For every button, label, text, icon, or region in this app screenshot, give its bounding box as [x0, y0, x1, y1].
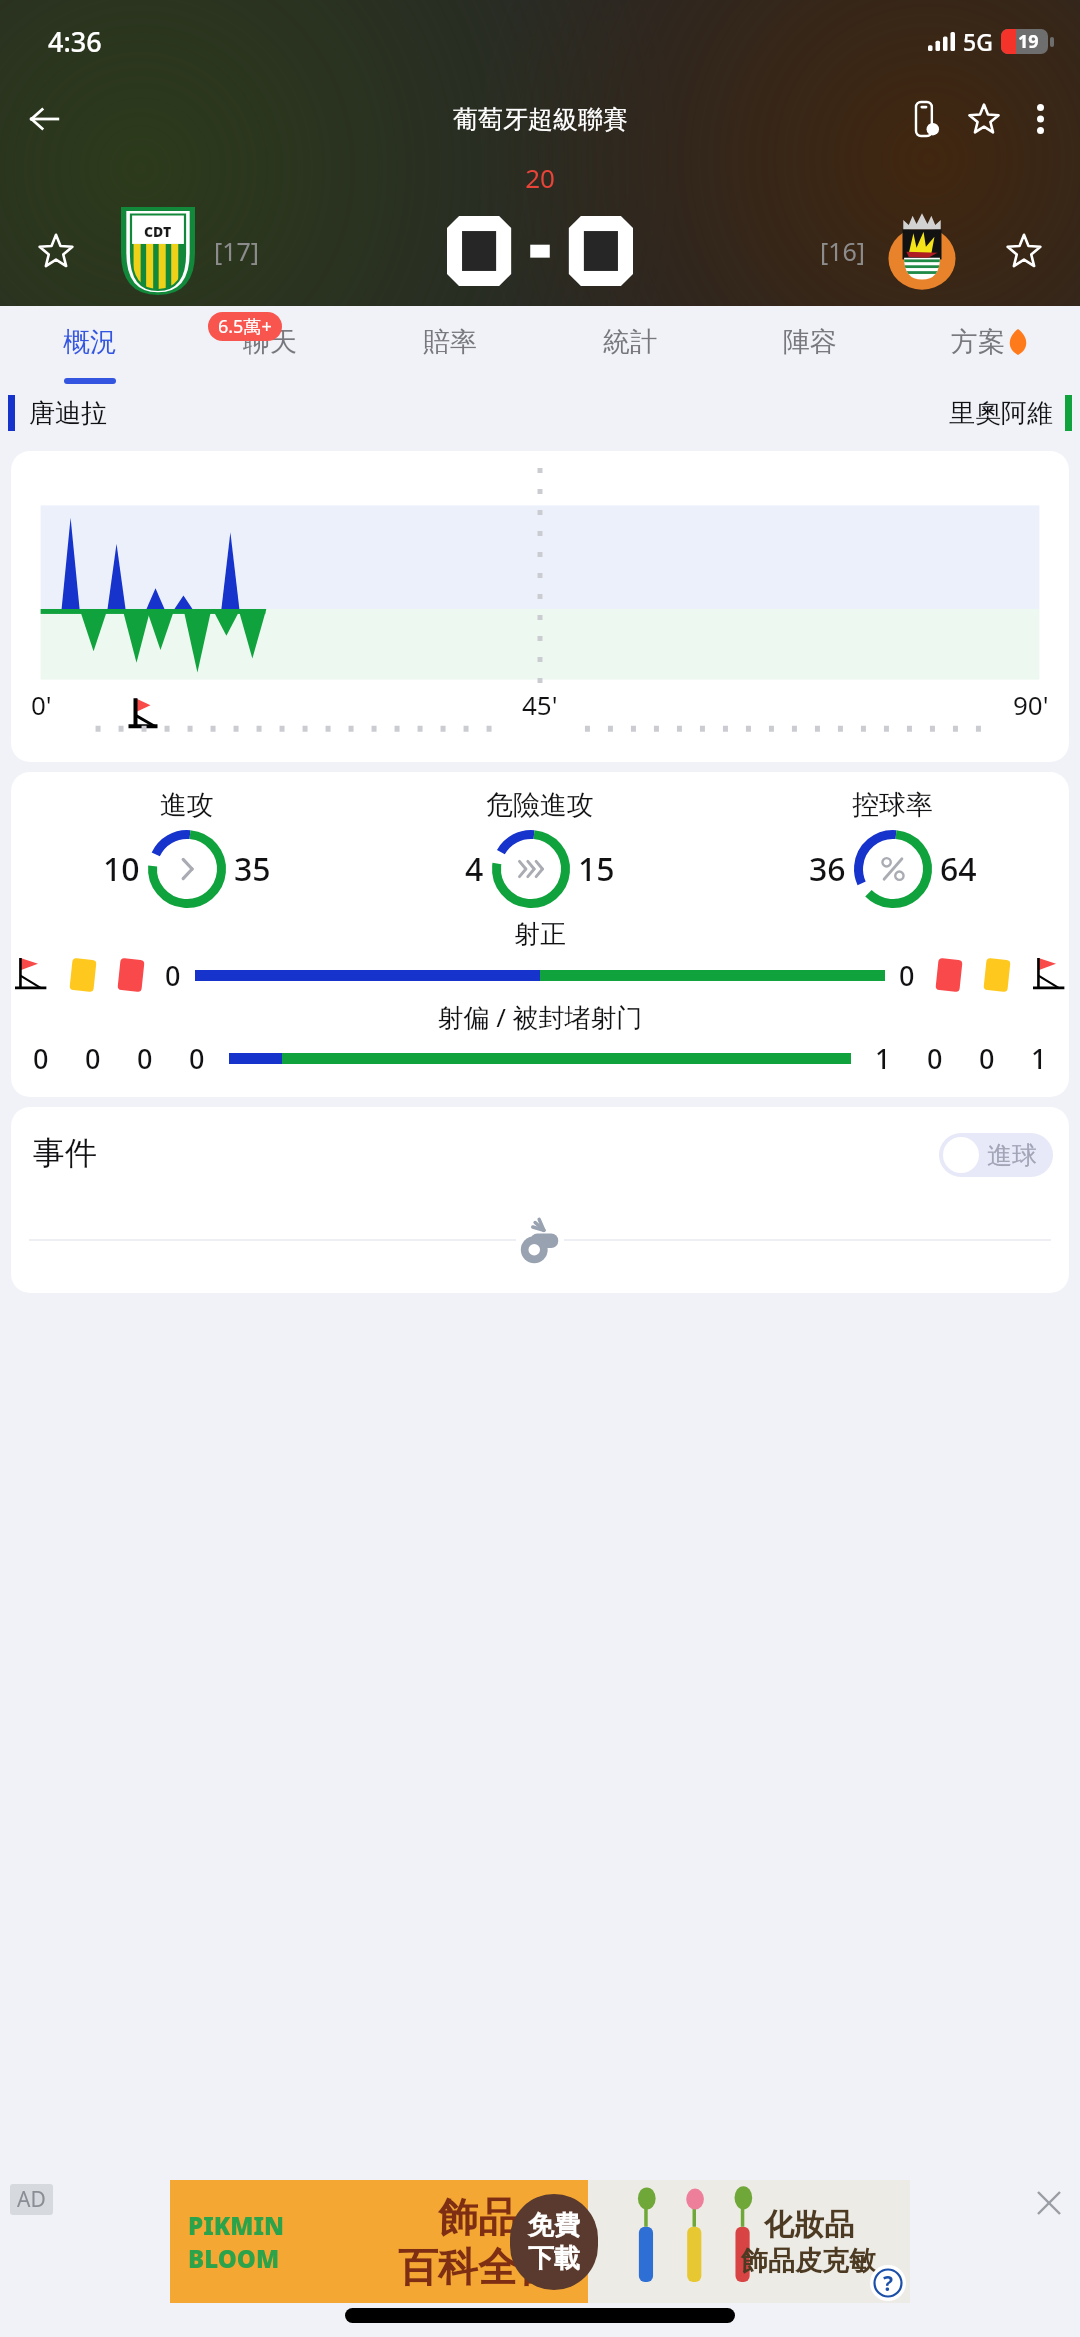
staticText: 0 — [979, 1040, 995, 1077]
staticText: 0 — [165, 957, 181, 994]
staticText: 飾品皮克敏 — [741, 2244, 876, 2278]
staticText: 36 — [809, 847, 846, 891]
staticText: 0 — [927, 1040, 943, 1077]
staticText: 控球率 — [852, 788, 933, 822]
button[interactable]: 統計 — [540, 306, 720, 384]
staticText: 19 — [1018, 29, 1039, 54]
staticText: 6.5萬+ — [218, 314, 272, 339]
staticText: ? — [883, 2269, 894, 2298]
staticText: 進球 — [987, 1140, 1037, 1171]
staticText: 0 — [899, 957, 915, 994]
staticText: 4:36 — [48, 23, 102, 60]
button[interactable]: Favourite home team — [0, 201, 112, 301]
button[interactable]: Favourite away team — [968, 201, 1080, 301]
staticText: 64 — [940, 847, 977, 891]
staticText: [17] — [214, 234, 260, 268]
staticText: 1 — [1031, 1040, 1047, 1077]
staticText: 90' — [1013, 687, 1049, 722]
button[interactable]: 陣容 — [720, 306, 900, 384]
button[interactable]: Close ad — [1028, 2182, 1070, 2224]
staticText: 射偏 / 被封堵射门 — [11, 999, 1069, 1035]
staticText: 百科全書 — [398, 2242, 558, 2292]
staticText: 進攻 — [160, 788, 214, 822]
button[interactable]: 進攻 — [11, 772, 1069, 1097]
staticText: 下載 — [528, 2242, 580, 2275]
staticText: PIKMIN — [188, 2209, 284, 2242]
staticText: 葡萄牙超級聯賽 — [453, 104, 628, 135]
staticText: 事件 — [33, 1133, 97, 1173]
staticText: 概況 — [63, 325, 117, 359]
staticText: 危險進攻 — [486, 788, 594, 822]
staticText: 化妝品 — [764, 2206, 854, 2244]
button[interactable]: 賠率 — [360, 306, 540, 384]
button[interactable]: 聊天 — [180, 306, 360, 384]
staticText: 35 — [234, 847, 271, 891]
button[interactable]: Cast to device — [900, 91, 956, 147]
staticText: CDT — [144, 222, 172, 241]
staticText: 飾品 — [438, 2192, 518, 2242]
button[interactable]: 進球 — [939, 1133, 1053, 1177]
staticText: 射正 — [11, 918, 1069, 951]
staticText: 0 — [189, 1040, 205, 1077]
button[interactable]: Add to favourites — [956, 91, 1012, 147]
staticText: 唐迪拉 — [29, 397, 107, 430]
staticText: AD — [17, 2185, 46, 2214]
staticText: 0 — [33, 1040, 49, 1077]
staticText: 10 — [103, 847, 140, 891]
staticText: 45' — [522, 687, 558, 722]
staticText: [16] — [820, 234, 866, 268]
staticText: 免費 — [528, 2209, 580, 2242]
button[interactable]: Back — [18, 93, 70, 145]
staticText: 0' — [31, 687, 52, 722]
button[interactable]: 事件 — [11, 1107, 1069, 1293]
staticText: 統計 — [603, 325, 657, 359]
staticText: 5G — [963, 26, 993, 57]
staticText: 1 — [875, 1040, 891, 1077]
button[interactable]: More options — [1012, 91, 1068, 147]
staticText: BLOOM — [188, 2242, 280, 2275]
staticText: 0 — [85, 1040, 101, 1077]
button[interactable]: 0' — [11, 451, 1069, 762]
staticText: 聊天 — [243, 325, 297, 359]
staticText: 陣容 — [783, 325, 837, 359]
staticText: 4 — [465, 847, 484, 891]
button[interactable]: 方案 — [900, 306, 1080, 384]
staticText: 里奧阿維 — [949, 397, 1053, 430]
button[interactable]: 概況 — [0, 306, 180, 384]
staticText: 15 — [578, 847, 615, 891]
staticText: 0 — [137, 1040, 153, 1077]
button[interactable]: PIKMIN — [170, 2180, 910, 2303]
staticText: 20 — [0, 160, 1080, 195]
staticText: 賠率 — [423, 325, 477, 359]
staticText: 方案 — [951, 325, 1005, 359]
